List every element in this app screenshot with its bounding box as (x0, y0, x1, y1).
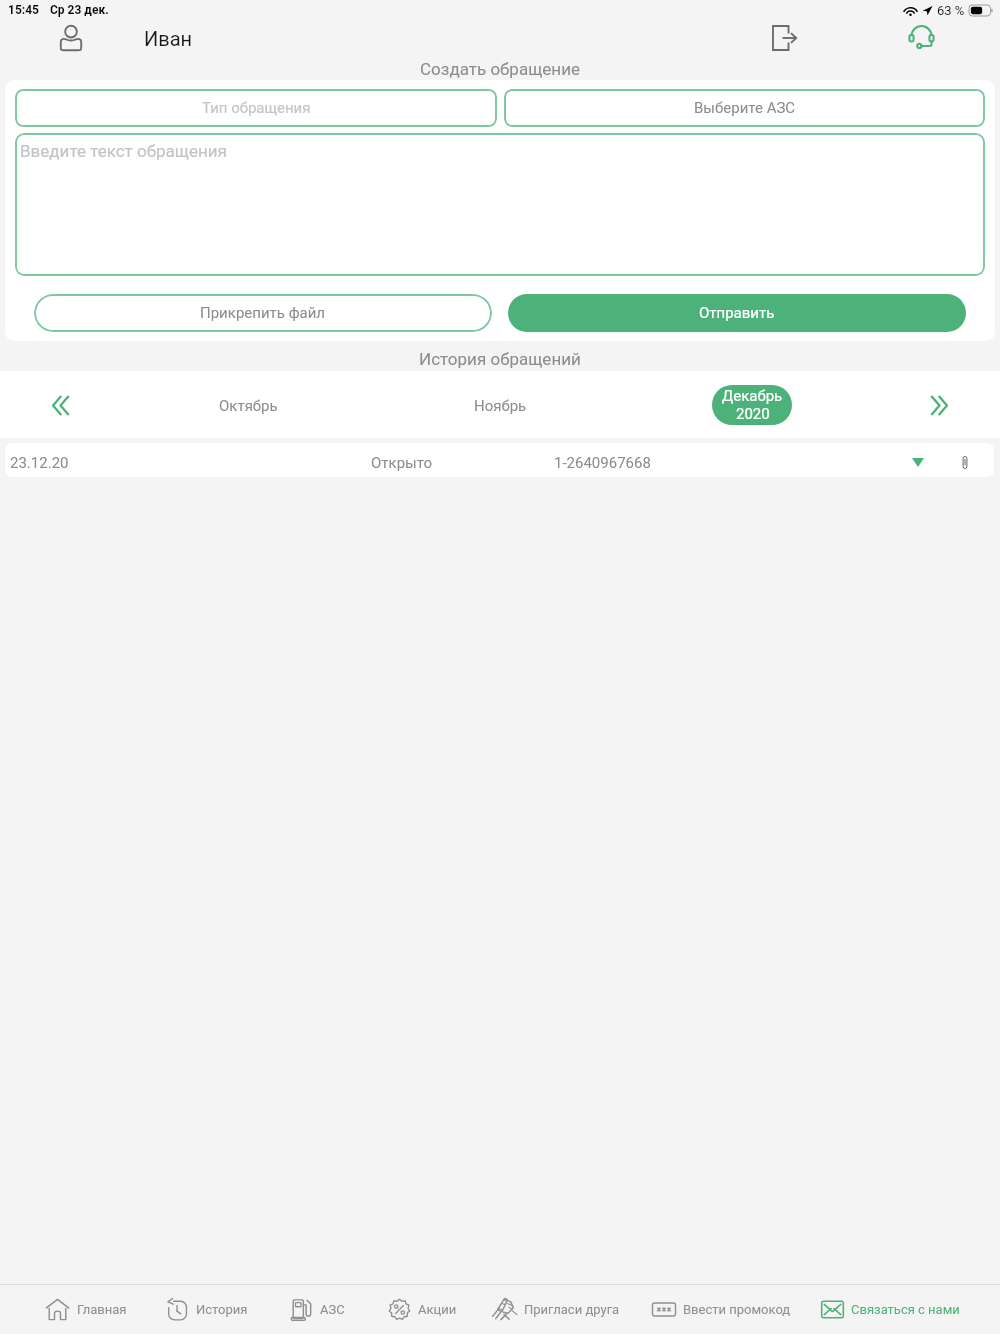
staticText: Акции (418, 1302, 457, 1317)
staticText: 2020 (736, 405, 770, 423)
button[interactable]: Акции (380, 1292, 427, 1330)
staticText: Главная (77, 1302, 127, 1317)
button[interactable]: Связаться с нами (813, 1292, 930, 1330)
staticText: Связаться с нами (851, 1302, 960, 1317)
staticText: Выберите АЗС (694, 99, 796, 117)
button[interactable]: История (158, 1292, 218, 1330)
staticText: Введите текст обращения (20, 141, 227, 161)
staticText: История обращений (419, 349, 581, 369)
button[interactable]: Прикрепить файл (34, 294, 492, 332)
button[interactable]: Ввести промокод (644, 1292, 760, 1330)
button[interactable]: Пригласи друга (484, 1292, 588, 1330)
staticText: Ввести промокод (683, 1302, 791, 1317)
staticText: Отправить (699, 304, 775, 322)
button[interactable]: Профиль (50, 20, 92, 56)
button[interactable]: Предыдущий месяц (36, 386, 84, 424)
staticText: Создать обращение (420, 59, 580, 79)
staticText: Декабрь (722, 387, 783, 405)
button[interactable]: 23.12.20 (5, 443, 994, 477)
button[interactable]: Иван (144, 23, 193, 53)
staticText: История (196, 1302, 248, 1317)
staticText: 15:45 (8, 3, 39, 17)
button[interactable]: Октябрь (219, 397, 278, 415)
staticText: Пригласи друга (524, 1302, 620, 1317)
button[interactable]: Поддержка (900, 20, 942, 56)
staticText: 63 % (937, 3, 965, 18)
button[interactable]: Тип обращения (15, 89, 497, 127)
button[interactable]: Вложение (949, 446, 981, 477)
button[interactable]: Развернуть (902, 446, 934, 477)
button[interactable]: Ноябрь (474, 397, 527, 415)
button[interactable]: Выберите АЗС (504, 89, 985, 127)
staticText: Ср 23 дек. (50, 3, 109, 17)
button[interactable]: АЗС (282, 1292, 315, 1330)
button[interactable]: Выход (764, 20, 804, 56)
button[interactable]: Отправить (508, 294, 966, 332)
button[interactable]: Главная (38, 1292, 96, 1330)
staticText: Иван (144, 27, 193, 50)
staticText: АЗС (320, 1302, 345, 1317)
staticText: Прикрепить файл (200, 304, 326, 322)
staticText: 1-2640967668 (554, 454, 651, 472)
staticText: 23.12.20 (10, 454, 69, 472)
button[interactable]: Декабрь (712, 385, 792, 425)
button[interactable]: Следующий месяц (915, 386, 963, 424)
staticText: Тип обращения (202, 99, 311, 117)
button[interactable]: Введите текст обращения (15, 133, 985, 276)
staticText: Открыто (371, 454, 433, 472)
